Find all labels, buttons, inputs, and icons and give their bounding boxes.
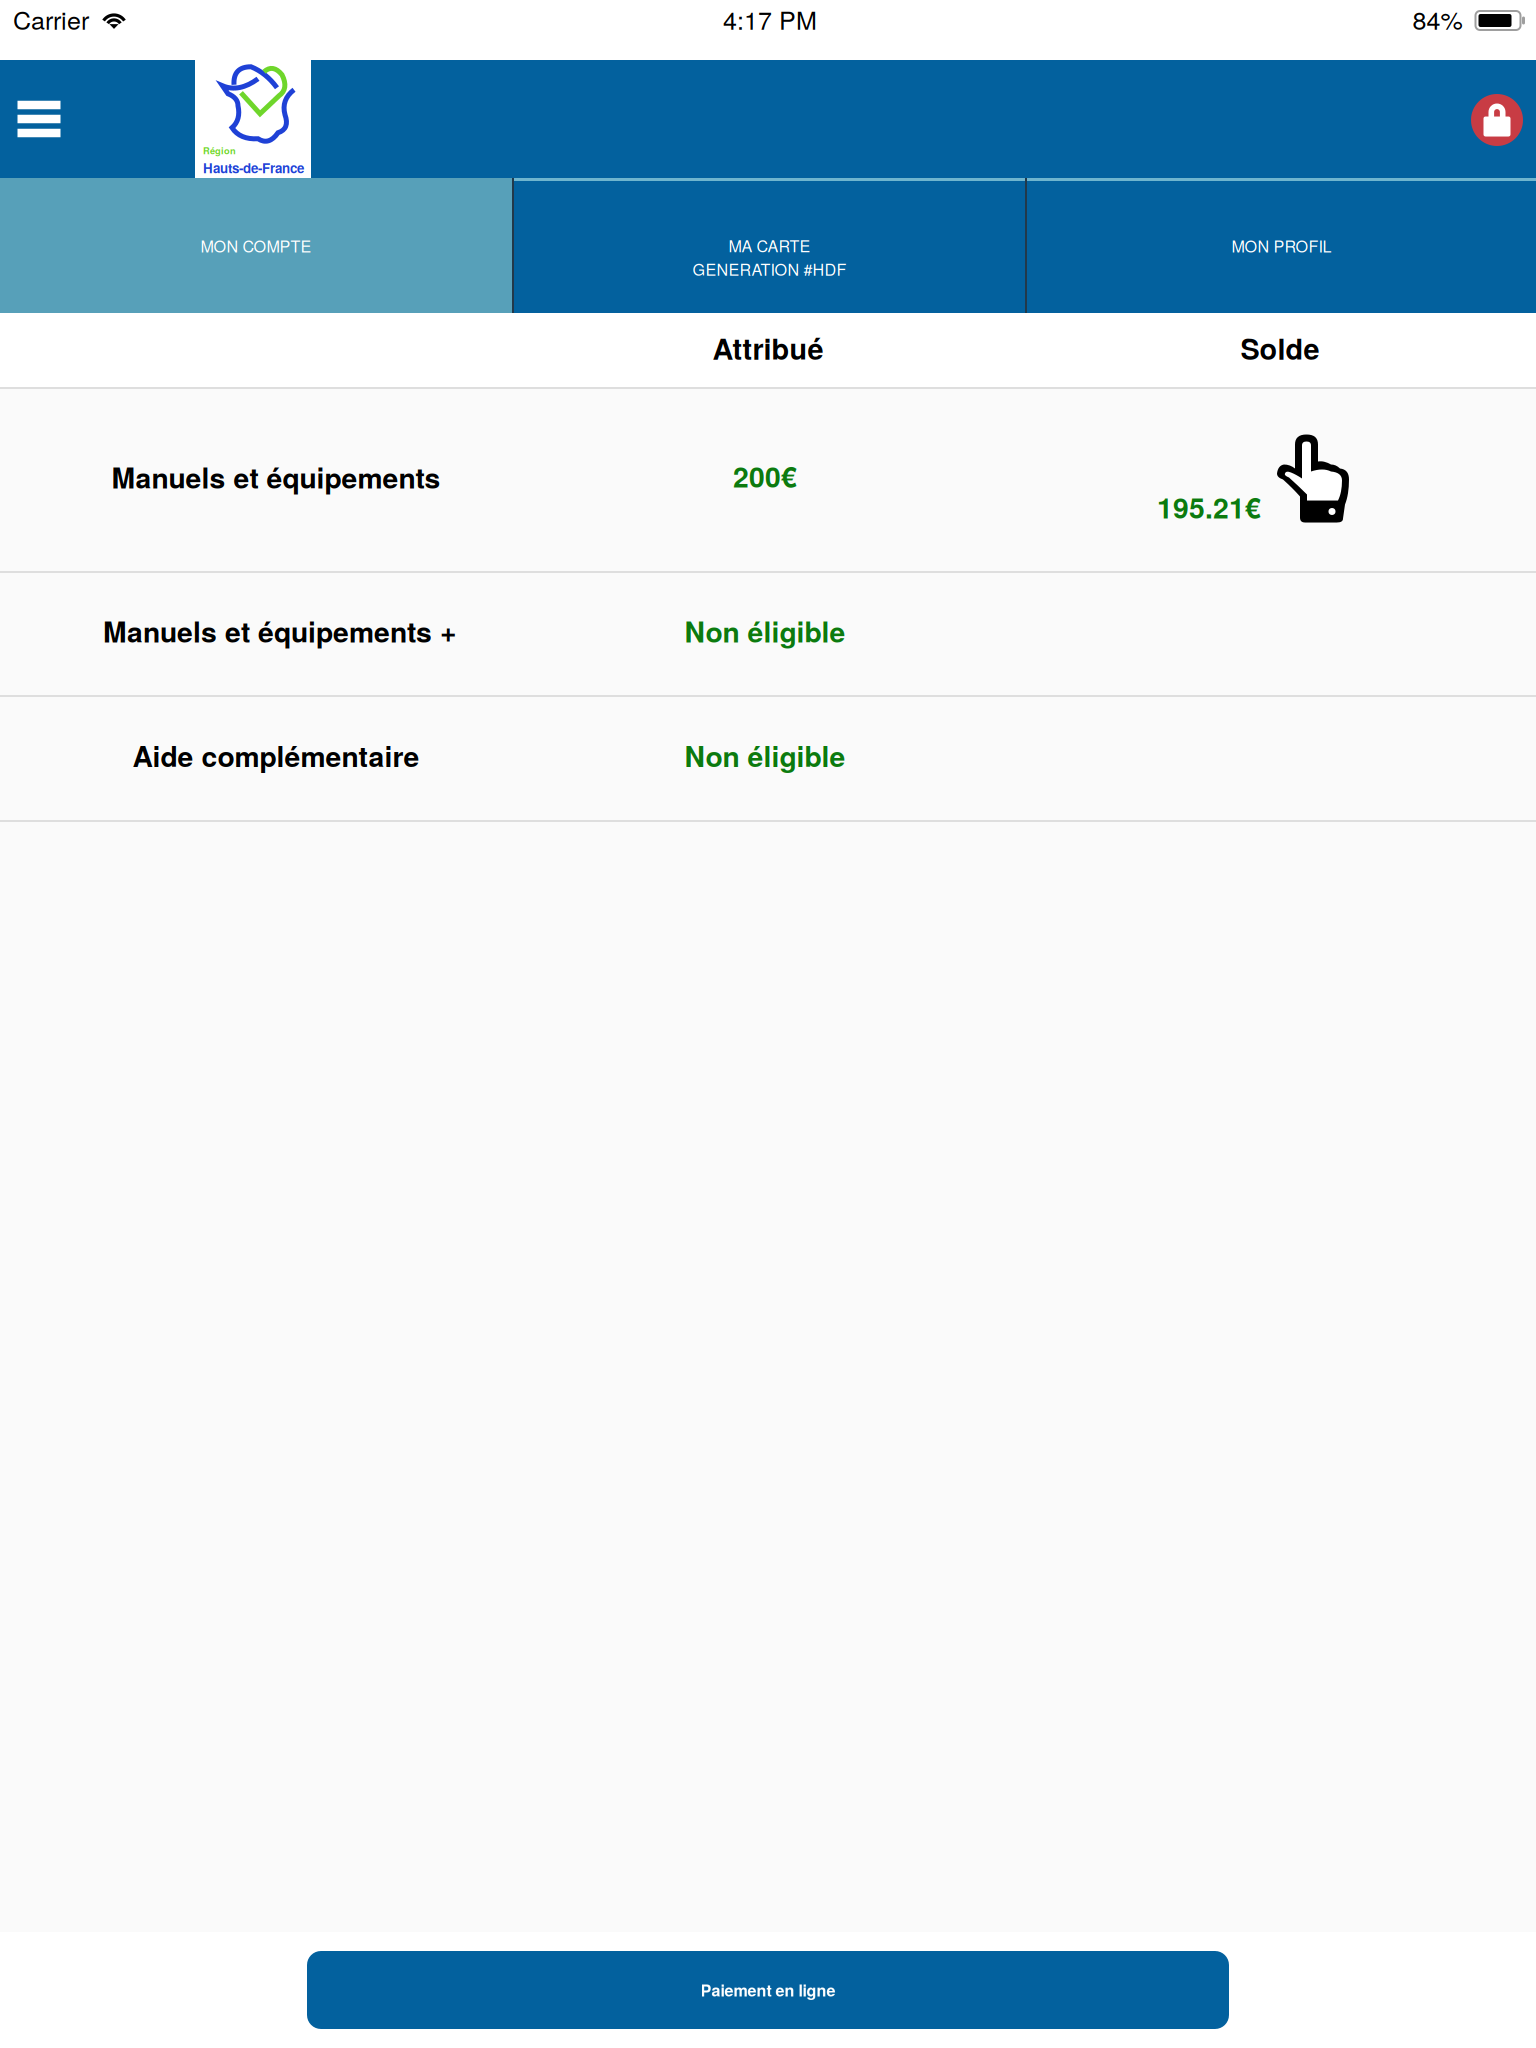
- staticText: Manuels et équipements +: [103, 611, 457, 651]
- staticText: Solde: [1240, 327, 1319, 369]
- staticText: Non éligible: [684, 735, 845, 776]
- button[interactable]: Manuels et équipements +: [0, 573, 1536, 695]
- staticText: Carrier: [13, 1, 89, 37]
- staticText: Paiement en ligne: [700, 1978, 835, 2001]
- staticText: Aide complémentaire: [132, 735, 419, 776]
- staticText: Attribué: [712, 327, 823, 369]
- staticText: Non éligible: [684, 611, 845, 651]
- button[interactable]: Paiement en ligne: [307, 1951, 1229, 2029]
- staticText: 195.21€: [1157, 487, 1261, 527]
- button[interactable]: MON COMPTE: [0, 178, 512, 313]
- staticText: GENERATION #HDF: [692, 257, 846, 280]
- staticText: Hauts-de-France: [203, 158, 304, 177]
- button[interactable]: Menu: [0, 60, 78, 178]
- staticText: Manuels et équipements: [111, 457, 440, 497]
- button[interactable]: MA CARTE: [514, 178, 1025, 313]
- staticText: 4:17 PM: [723, 1, 817, 37]
- button[interactable]: Se déconnecter: [1455, 61, 1536, 179]
- staticText: MA CARTE: [728, 234, 810, 257]
- button[interactable]: Manuels et équipements: [0, 389, 1536, 571]
- staticText: 200€: [733, 456, 797, 496]
- button[interactable]: MON PROFIL: [1027, 178, 1536, 313]
- button[interactable]: Aide complémentaire: [0, 697, 1536, 820]
- staticText: MON PROFIL: [1231, 234, 1331, 257]
- staticText: MON COMPTE: [200, 234, 311, 257]
- staticText: 84%: [1412, 1, 1462, 37]
- staticText: Région: [203, 144, 236, 157]
